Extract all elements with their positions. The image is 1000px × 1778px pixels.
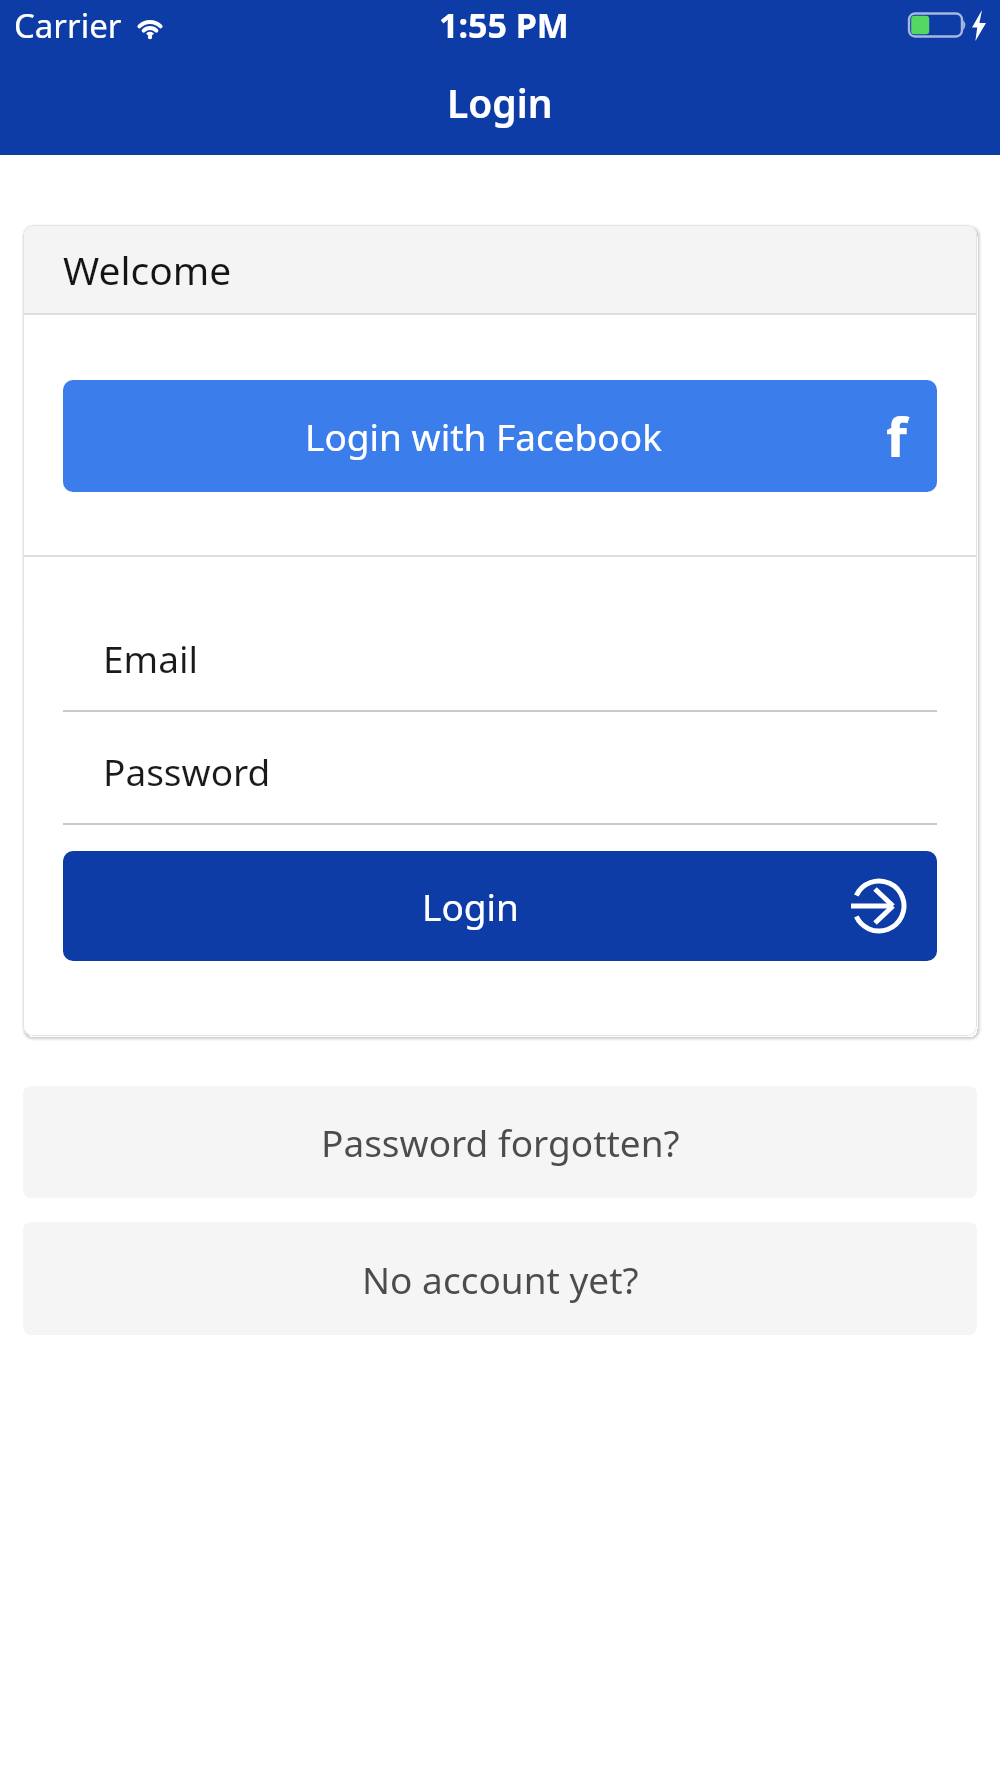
staticText: 1:55 PM — [439, 2, 569, 48]
staticText: Login — [447, 76, 553, 129]
staticText: Password forgotten? — [321, 1117, 680, 1167]
staticText: Password — [103, 746, 271, 796]
staticText: Carrier — [14, 3, 122, 48]
staticText: Welcome — [63, 243, 232, 296]
staticText: Login — [422, 881, 519, 931]
staticText: No account yet? — [362, 1254, 639, 1304]
button[interactable]: Login with Facebook — [63, 380, 937, 492]
button[interactable]: Password forgotten? — [23, 1086, 977, 1198]
staticText: Email — [103, 633, 199, 683]
button[interactable]: No account yet? — [23, 1222, 977, 1335]
staticText: f — [886, 399, 907, 473]
staticText: Login with Facebook — [305, 411, 662, 461]
button[interactable]: Login — [63, 851, 937, 961]
